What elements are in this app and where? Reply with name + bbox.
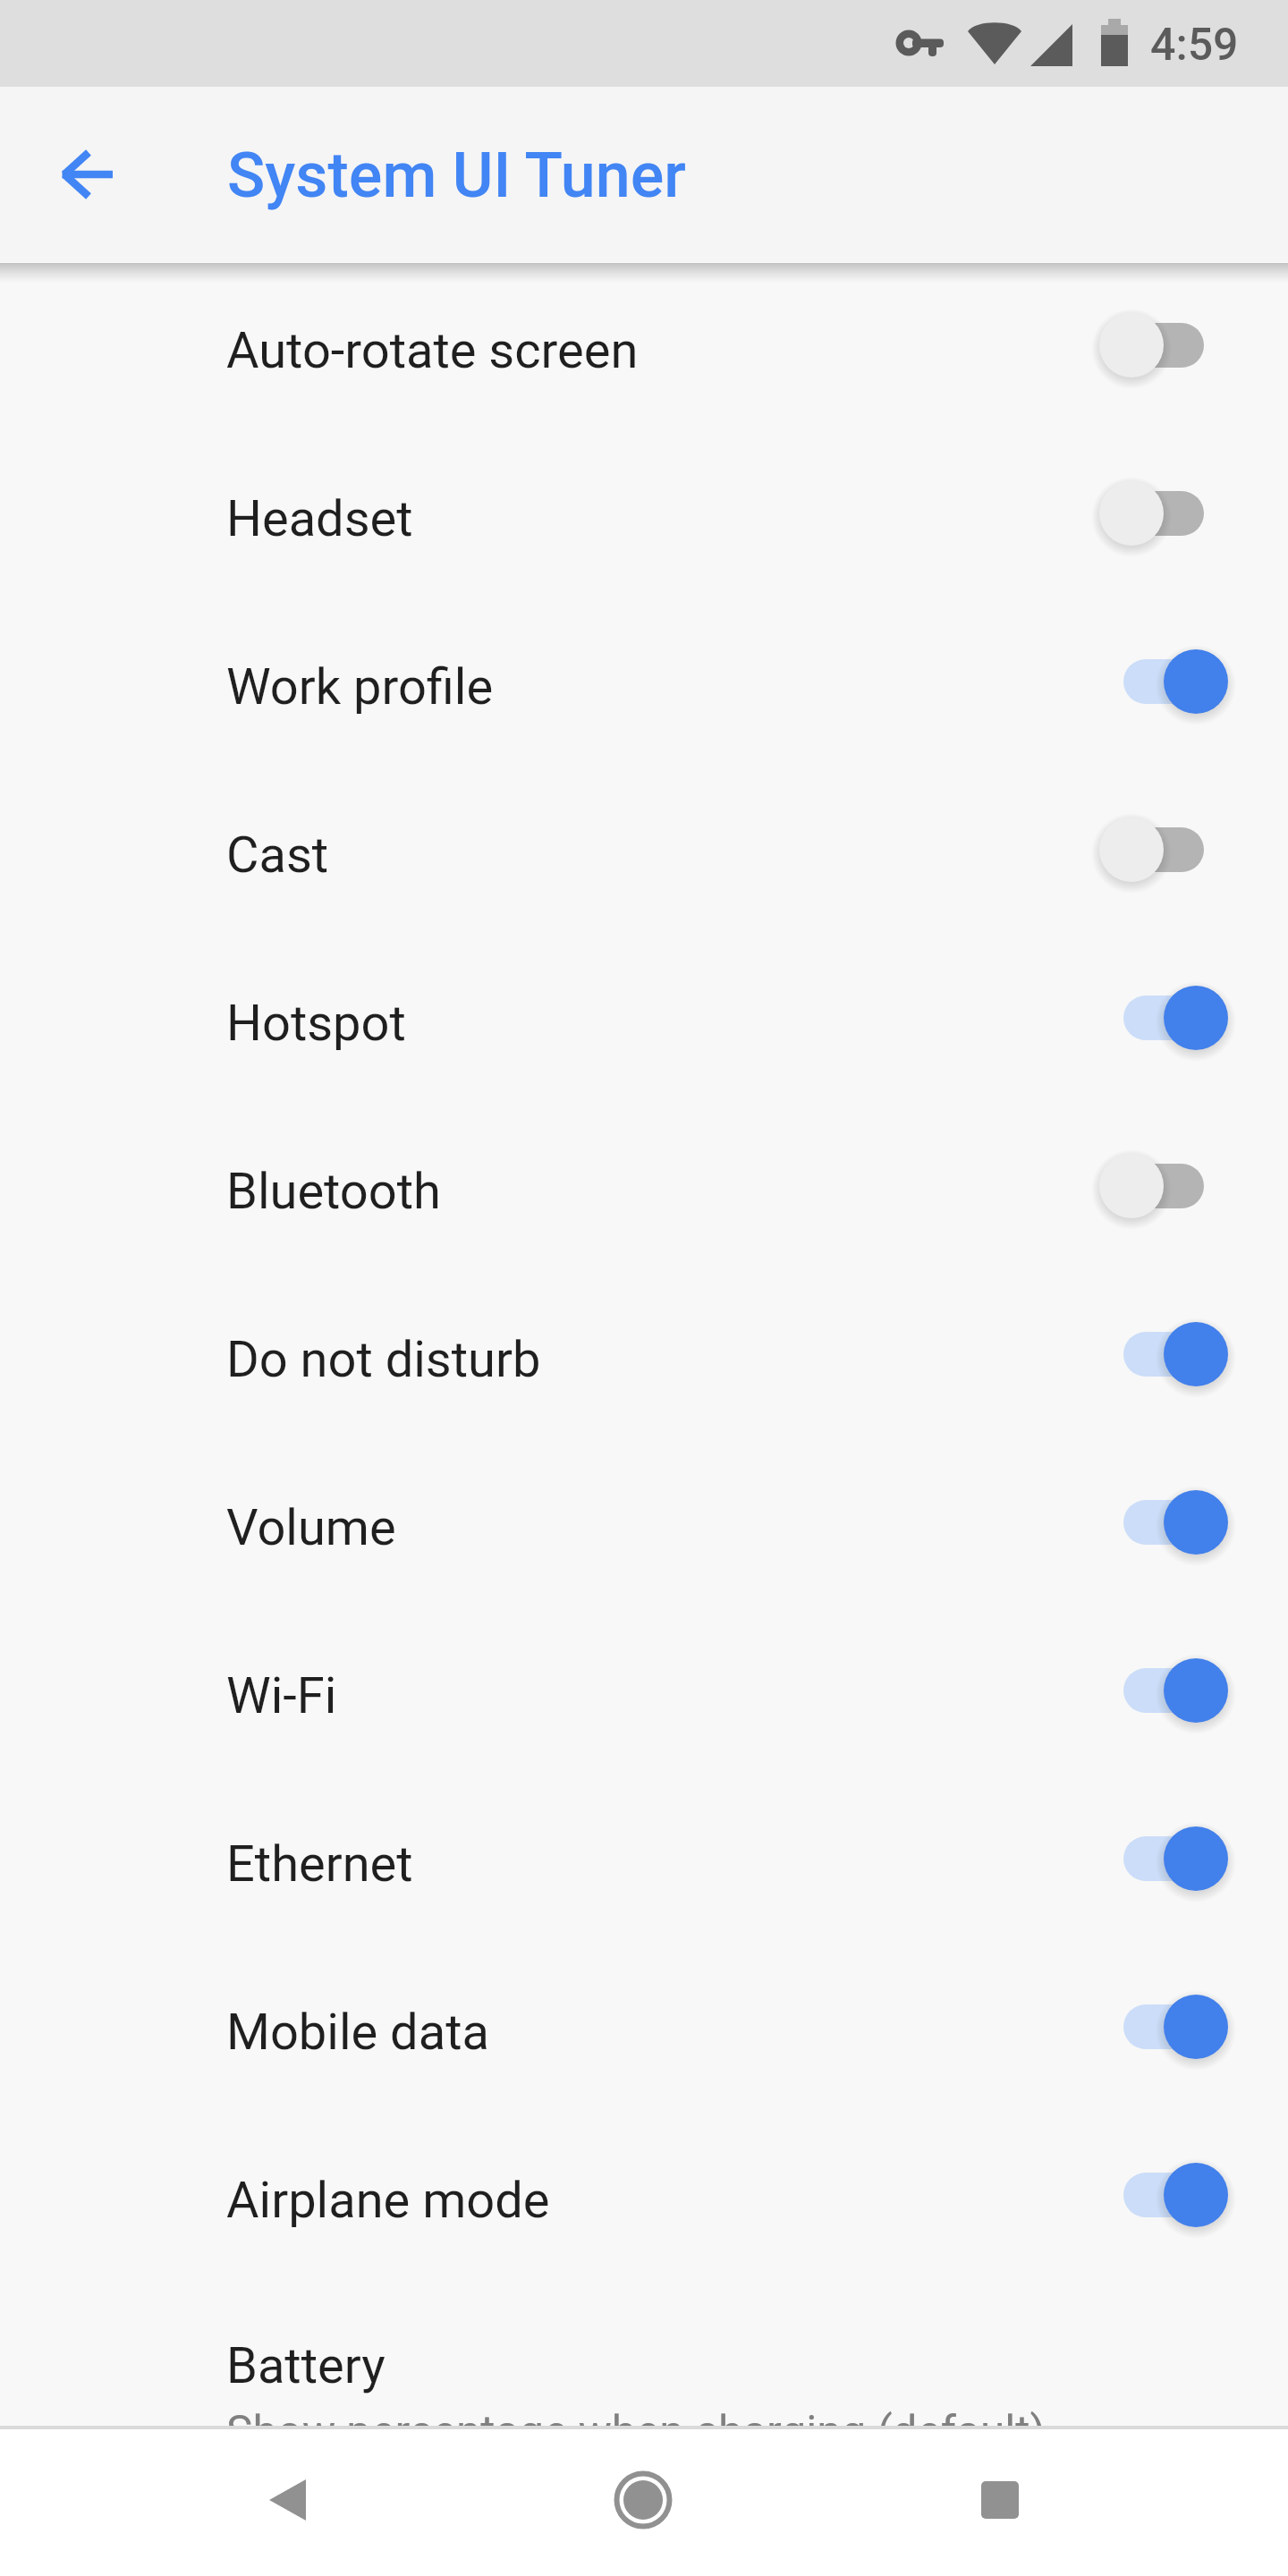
- staticText: Wi-Fi: [226, 1666, 337, 1725]
- staticText: Do not disturb: [226, 1330, 541, 1389]
- button[interactable]: Bluetooth: [0, 1109, 1288, 1277]
- staticText: Hotspot: [226, 994, 406, 1053]
- button[interactable]: Home: [600, 2457, 686, 2543]
- button[interactable]: Do not disturb: [0, 1277, 1288, 1445]
- button[interactable]: Headset: [0, 436, 1288, 605]
- staticText: Work profile: [226, 657, 494, 716]
- staticText: Battery: [226, 2336, 386, 2395]
- staticText: Auto-rotate screen: [226, 321, 639, 380]
- staticText: Volume: [226, 1498, 396, 1557]
- button[interactable]: Work profile: [0, 605, 1288, 773]
- button[interactable]: Hotspot: [0, 941, 1288, 1109]
- button[interactable]: Mobile data: [0, 1950, 1288, 2118]
- staticText: Cast: [226, 826, 329, 885]
- button[interactable]: Battery: [0, 2286, 1288, 2426]
- button[interactable]: Volume: [0, 1445, 1288, 1614]
- staticText: Ethernet: [226, 1835, 413, 1894]
- staticText: Airplane mode: [226, 2171, 550, 2230]
- button[interactable]: Cast: [0, 773, 1288, 941]
- staticText: 4:59: [1150, 19, 1239, 72]
- button[interactable]: Navigate up: [38, 124, 138, 225]
- staticText: Mobile data: [226, 2003, 489, 2062]
- button[interactable]: Ethernet: [0, 1782, 1288, 1950]
- button[interactable]: Wi-Fi: [0, 1614, 1288, 1782]
- staticText: System UI Tuner: [227, 139, 686, 212]
- staticText: Bluetooth: [226, 1162, 441, 1221]
- staticText: Headset: [226, 489, 413, 548]
- button[interactable]: Back: [245, 2457, 331, 2543]
- staticText: Show percentage when charging (default): [226, 2406, 1046, 2458]
- button[interactable]: Auto-rotate screen: [0, 268, 1288, 436]
- button[interactable]: Airplane mode: [0, 2118, 1288, 2286]
- button[interactable]: Recent apps: [957, 2457, 1043, 2543]
